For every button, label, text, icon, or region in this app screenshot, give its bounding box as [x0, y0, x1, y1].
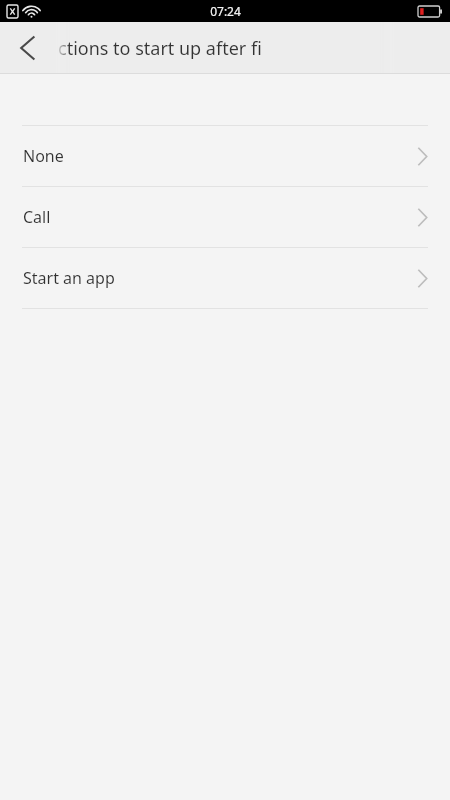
staticText: Call	[23, 206, 51, 228]
staticText: None	[23, 145, 64, 167]
button[interactable]: Back	[0, 22, 56, 74]
button[interactable]: None	[0, 126, 450, 186]
staticText: Start an app	[23, 267, 115, 289]
staticText: ctions to start up after fi	[58, 36, 262, 61]
button[interactable]: Start an app	[0, 248, 450, 308]
button[interactable]: Call	[0, 187, 450, 247]
staticText: 07:24	[210, 3, 241, 19]
